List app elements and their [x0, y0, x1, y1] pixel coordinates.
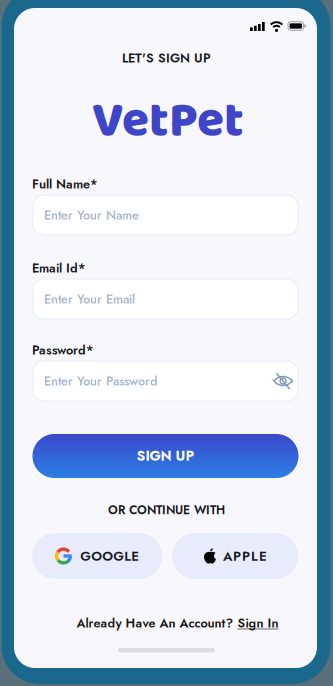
staticText: LET'S SIGN UP — [122, 49, 211, 67]
button[interactable]: Enter Your Name — [33, 195, 298, 235]
staticText: OR CONTINUE WITH — [108, 501, 225, 519]
staticText: Enter Your Name — [44, 206, 139, 224]
button[interactable]: Already Have An Account? Sign In — [11, 615, 333, 631]
button[interactable]: Enter Your Email — [33, 279, 298, 319]
button[interactable]: GOOGLE — [32, 533, 162, 579]
staticText: VetPet — [92, 81, 244, 160]
button[interactable]: A P P L E — [172, 533, 298, 579]
staticText: SIGN UP — [136, 446, 194, 466]
button[interactable]: Show password — [273, 371, 298, 391]
staticText: Email Id* — [32, 259, 85, 277]
staticText: Enter Your Password — [44, 372, 157, 390]
staticText: GOOGLE — [80, 546, 139, 566]
staticText: A P P L E — [223, 546, 267, 566]
staticText: Already Have An Account? Sign In — [76, 614, 278, 632]
staticText: Enter Your Email — [44, 290, 135, 308]
button[interactable]: SIGN UP — [32, 434, 298, 478]
staticText: Password* — [32, 341, 93, 359]
staticText: Full Name* — [32, 175, 97, 193]
button[interactable]: Enter Your Password — [33, 361, 298, 401]
